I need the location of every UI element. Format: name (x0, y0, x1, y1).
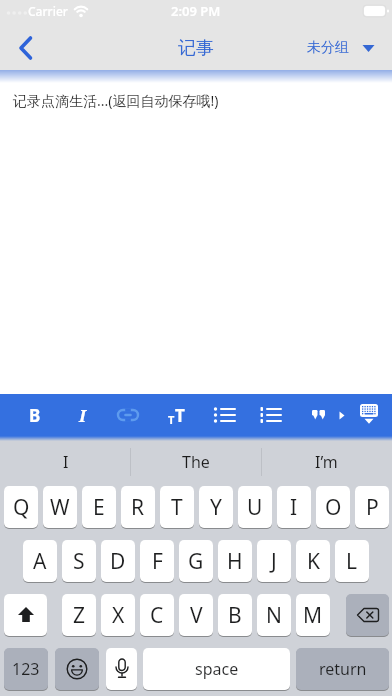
staticText: D (110, 547, 126, 576)
staticText: H (227, 547, 243, 576)
button[interactable]: X (101, 594, 135, 636)
button[interactable]: A (23, 540, 57, 582)
staticText: space (195, 658, 239, 680)
staticText: O (325, 493, 342, 522)
button[interactable]: E (82, 486, 116, 528)
button[interactable]: B (218, 594, 252, 636)
button[interactable]: J (257, 540, 291, 582)
staticText: K (307, 547, 320, 576)
button[interactable]: T (160, 486, 194, 528)
button[interactable]: M (296, 594, 330, 636)
button[interactable] (8, 30, 44, 66)
button[interactable]: B (17, 394, 53, 436)
staticText: 未分组 (307, 39, 349, 57)
button[interactable] (346, 594, 389, 636)
button[interactable]: C (140, 594, 174, 636)
button[interactable] (207, 394, 243, 436)
button[interactable]: return (296, 648, 389, 690)
button[interactable]: Q (4, 486, 38, 528)
staticText: P (366, 493, 379, 522)
button[interactable]: The (131, 438, 261, 486)
staticText: B (29, 404, 41, 427)
button[interactable] (301, 394, 337, 436)
staticText: S (73, 547, 85, 576)
button[interactable]: O (316, 486, 350, 528)
staticText: Carrier (28, 3, 68, 19)
button[interactable] (110, 394, 146, 436)
button[interactable]: R (121, 486, 155, 528)
button[interactable]: W (43, 486, 77, 528)
staticText: U (247, 493, 263, 522)
button[interactable]: 记录点滴生活...(返回自动保存哦!) (0, 83, 392, 394)
staticText: R (131, 493, 145, 522)
staticText: Y (210, 493, 222, 522)
button[interactable]: P (355, 486, 389, 528)
staticText: C (150, 601, 164, 630)
staticText: L (346, 547, 358, 576)
staticText: Z (73, 601, 86, 630)
staticText: X (112, 601, 125, 630)
button[interactable] (55, 648, 99, 690)
button[interactable]: I (64, 394, 100, 436)
staticText: I (79, 404, 86, 427)
button[interactable]: F (140, 540, 174, 582)
staticText: N (266, 601, 282, 630)
staticText: 记事 (178, 37, 214, 60)
staticText: 123 (12, 658, 40, 680)
button[interactable] (4, 594, 47, 636)
button[interactable]: K (296, 540, 330, 582)
button[interactable]: L (335, 540, 369, 582)
staticText: The (182, 451, 210, 473)
button[interactable]: H (218, 540, 252, 582)
button[interactable]: space (143, 648, 290, 690)
button[interactable] (352, 394, 386, 436)
staticText: J (271, 547, 277, 576)
staticText: A (33, 547, 47, 576)
staticText: I’m (315, 451, 338, 473)
button[interactable]: G (179, 540, 213, 582)
button[interactable]: I (277, 486, 311, 528)
button[interactable]: 123 (4, 648, 48, 690)
staticText: Q (13, 493, 30, 522)
staticText: 2:09 PM (171, 2, 221, 20)
button[interactable]: Z (62, 594, 96, 636)
button[interactable] (106, 648, 137, 690)
staticText: W (50, 493, 70, 522)
button[interactable]: D (101, 540, 135, 582)
button[interactable]: I (0, 438, 131, 486)
button[interactable]: N (257, 594, 291, 636)
staticText: I (63, 451, 69, 473)
button[interactable]: V (179, 594, 213, 636)
button[interactable]: 未分组 (296, 30, 388, 66)
staticText: I (290, 493, 298, 522)
button[interactable] (253, 394, 289, 436)
button[interactable]: S (62, 540, 96, 582)
staticText: E (93, 493, 105, 522)
button[interactable]: T (158, 394, 194, 436)
staticText: F (152, 547, 163, 576)
staticText: M (303, 601, 323, 630)
staticText: T (171, 493, 183, 522)
staticText: T (175, 404, 185, 427)
button[interactable]: I’m (261, 438, 392, 486)
staticText: T (168, 412, 175, 427)
button[interactable] (334, 399, 350, 431)
staticText: 记录点滴生活...(返回自动保存哦!) (13, 91, 219, 110)
staticText: V (190, 601, 203, 630)
button[interactable]: U (238, 486, 272, 528)
staticText: return (319, 658, 367, 680)
button[interactable]: Y (199, 486, 233, 528)
staticText: G (188, 547, 204, 576)
staticText: B (228, 601, 242, 630)
